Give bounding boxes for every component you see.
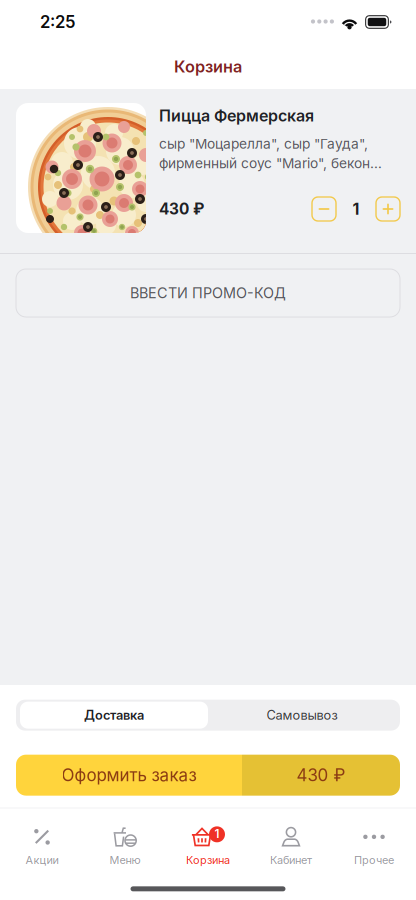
- staticText: ВВЕСТИ ПРОМО-КОД: [130, 284, 286, 302]
- staticText: фирменный соус "Mario", бекон…: [159, 155, 382, 172]
- staticText: Корзина: [174, 57, 242, 76]
- staticText: Корзина: [186, 853, 230, 867]
- staticText: 430 ₽: [159, 200, 204, 218]
- staticText: 1: [214, 827, 219, 841]
- staticText: Доставка: [84, 707, 144, 723]
- button[interactable]: Кабинет: [249, 826, 332, 866]
- button[interactable]: Доставка: [20, 702, 208, 729]
- button[interactable]: Прочее: [332, 826, 415, 866]
- staticText: Самовывоз: [266, 707, 337, 723]
- staticText: Меню: [109, 853, 140, 867]
- button[interactable]: Меню: [83, 826, 166, 866]
- button[interactable]: ВВЕСТИ ПРОМО-КОД: [16, 269, 400, 317]
- button[interactable]: Оформить заказ: [16, 755, 400, 796]
- staticText: Кабинет: [270, 853, 312, 867]
- button[interactable]: Акции: [0, 826, 83, 866]
- staticText: Оформить заказ: [61, 765, 196, 785]
- staticText: Прочее: [354, 853, 394, 867]
- staticText: 430 ₽: [296, 765, 345, 785]
- staticText: Пицца Фермерская: [159, 106, 314, 125]
- staticText: Акции: [25, 853, 58, 867]
- button[interactable]: 1: [166, 826, 249, 866]
- staticText: 2:25: [40, 12, 75, 32]
- staticText: сыр "Моцарелла", сыр "Гауда",: [159, 135, 368, 152]
- button[interactable]: Уменьшить количество: [312, 197, 336, 221]
- button[interactable]: Увеличить количество: [376, 197, 400, 221]
- button[interactable]: Самовывоз: [208, 702, 396, 729]
- staticText: 1: [352, 199, 359, 219]
